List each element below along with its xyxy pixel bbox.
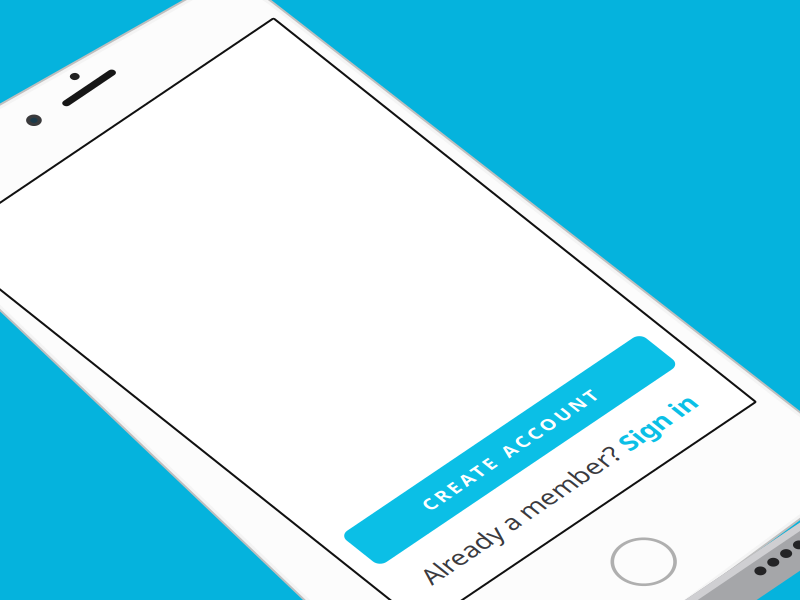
staticText: Already a member? [17, 1, 233, 33]
button[interactable]: CREATE ACCOUNT [0, 0, 338, 48]
staticText: Sign in [240, 1, 320, 33]
staticText: CREATE ACCOUNT [73, 12, 265, 35]
button[interactable]: Sign in [240, 1, 320, 33]
